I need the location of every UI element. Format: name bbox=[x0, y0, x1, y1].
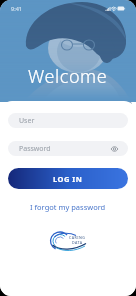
staticText: User bbox=[19, 116, 35, 126]
staticText: Welcome bbox=[28, 64, 108, 89]
staticText: 9:41 bbox=[11, 5, 22, 12]
button[interactable]: Show password bbox=[109, 143, 120, 154]
staticText: Password bbox=[19, 144, 51, 154]
button[interactable]: LOG IN bbox=[8, 168, 128, 189]
staticText: CARING bbox=[69, 235, 86, 240]
button[interactable]: User bbox=[8, 113, 128, 128]
staticText: LOG IN bbox=[53, 174, 83, 184]
button[interactable]: Password bbox=[8, 141, 128, 156]
button[interactable]: I forgot my password bbox=[24, 199, 112, 215]
staticText: DATA bbox=[72, 240, 83, 245]
